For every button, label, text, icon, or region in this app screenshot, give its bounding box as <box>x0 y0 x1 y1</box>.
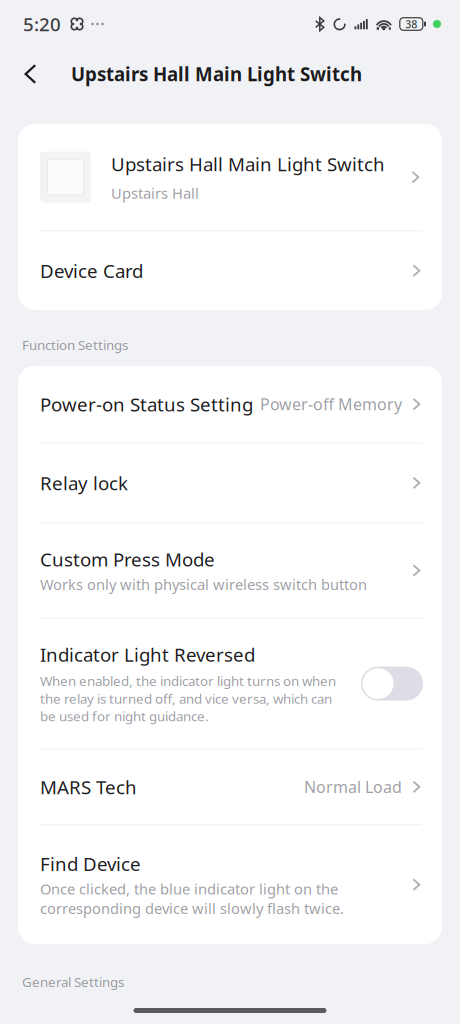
button[interactable]: Indicator Light Reversed <box>18 619 442 748</box>
button[interactable]: Device Card <box>18 231 442 310</box>
button[interactable]: Relay lock <box>18 444 442 522</box>
staticText: 38 <box>405 17 417 31</box>
staticText: Custom Press Mode <box>40 547 215 572</box>
staticText: Find Device <box>40 851 141 876</box>
button[interactable]: MARS Tech <box>18 749 442 824</box>
staticText: Works only with physical wireless switch… <box>40 575 367 594</box>
staticText: Device Card <box>40 258 143 283</box>
staticText: Once clicked, the blue indicator light o… <box>40 879 344 918</box>
staticText: Upstairs Hall Main Light Switch <box>71 62 362 86</box>
staticText: Indicator Light Reversed <box>40 642 255 667</box>
button[interactable]: Custom Press Mode <box>18 523 442 618</box>
button[interactable]: Upstairs Hall Main Light Switch <box>18 124 442 230</box>
staticText: Upstairs Hall <box>111 183 199 203</box>
staticText: Normal Load <box>304 776 402 797</box>
staticText: Upstairs Hall Main Light Switch <box>111 151 385 176</box>
staticText: Function Settings <box>22 336 128 354</box>
button[interactable]: Back <box>11 51 50 97</box>
staticText: 5:20 <box>23 12 61 36</box>
staticText: Relay lock <box>40 471 128 495</box>
staticText: When enabled, the indicator light turns … <box>40 672 336 725</box>
staticText: Power-off Memory <box>260 393 402 415</box>
button[interactable]: Find Device <box>18 825 442 944</box>
staticText: General Settings <box>22 973 124 991</box>
button[interactable]: Power-on Status Setting <box>18 366 442 443</box>
staticText: MARS Tech <box>40 774 137 799</box>
staticText: Power-on Status Setting <box>40 392 253 417</box>
